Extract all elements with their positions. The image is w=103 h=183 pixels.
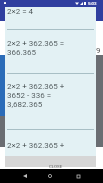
button[interactable]: Back bbox=[18, 170, 32, 182]
staticText: 9 bbox=[96, 46, 101, 55]
staticText: 5:03 bbox=[88, 1, 97, 6]
staticText: 2×2 = 4 bbox=[7, 7, 34, 16]
button[interactable]: CLOSE bbox=[45, 162, 67, 171]
staticText: 2×2 + 362.365 = bbox=[7, 39, 65, 48]
staticText: CLOSE bbox=[49, 164, 63, 169]
staticText: 2×2 + 362.365 + bbox=[7, 82, 65, 91]
staticText: 2×2 + 362.365 + bbox=[7, 141, 65, 150]
staticText: 366.365 bbox=[7, 48, 37, 57]
staticText: 3652 - 336 = bbox=[7, 91, 52, 100]
button[interactable]: Home bbox=[44, 170, 56, 182]
staticText: 3,682.365 bbox=[7, 100, 43, 109]
button[interactable]: Recent apps bbox=[72, 170, 84, 182]
